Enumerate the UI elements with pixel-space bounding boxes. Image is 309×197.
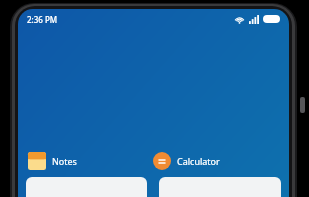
other: Notes — [28, 152, 46, 170]
other: Cellular signal — [249, 15, 259, 24]
other: Calculator — [153, 152, 171, 170]
other: Power — [300, 97, 305, 113]
button[interactable]: Calculator — [153, 152, 279, 170]
staticText: Calculator — [177, 155, 220, 167]
button[interactable] — [26, 177, 147, 197]
staticText: 2:36 PM — [27, 14, 58, 25]
other: Battery — [263, 15, 280, 23]
staticText: Notes — [52, 155, 77, 167]
button[interactable]: Notes — [28, 152, 153, 170]
button[interactable] — [159, 177, 281, 197]
other: Wi-Fi — [234, 15, 245, 24]
